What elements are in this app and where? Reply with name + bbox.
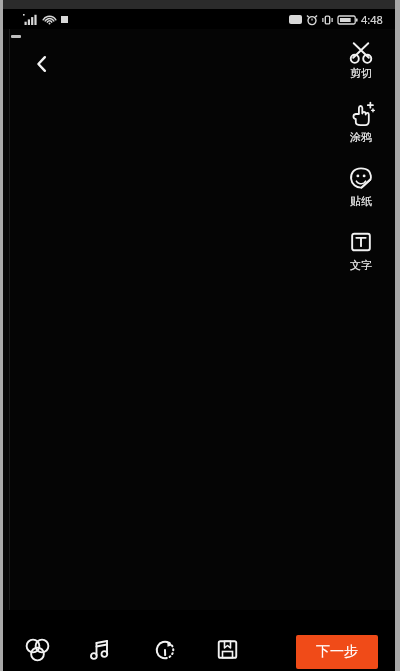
- button[interactable]: 涂鸦: [335, 99, 387, 146]
- staticText: 涂鸦: [350, 130, 372, 144]
- staticText: 4:48: [361, 12, 383, 27]
- staticText: 贴纸: [350, 194, 372, 208]
- button[interactable]: Filters: [17, 629, 57, 669]
- staticText: 剪切: [350, 66, 372, 80]
- button[interactable]: 剪切: [335, 35, 387, 82]
- button[interactable]: 文字: [335, 227, 387, 274]
- button[interactable]: Back: [21, 43, 63, 85]
- button[interactable]: Music: [81, 629, 121, 669]
- button[interactable]: 下一步: [296, 635, 378, 669]
- button[interactable]: Speed: [145, 629, 185, 669]
- button[interactable]: 贴纸: [335, 163, 387, 210]
- staticText: 文字: [350, 258, 372, 272]
- staticText: 下一步: [316, 643, 358, 661]
- button[interactable]: Save: [207, 629, 247, 669]
